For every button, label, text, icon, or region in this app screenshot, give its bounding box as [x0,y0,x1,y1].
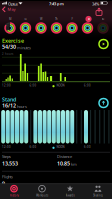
staticText: Th [55,17,58,21]
staticText: minutes [17,45,31,50]
staticText: 54/30 [2,43,16,50]
staticText: W [40,17,42,21]
staticText: Stand [2,96,16,103]
button[interactable] [34,14,48,36]
staticText: 9 [2,180,5,187]
button[interactable] [3,14,17,36]
button[interactable]: History [0,183,112,199]
staticText: Workouts [36,194,48,197]
button[interactable] [65,14,79,36]
button[interactable] [80,14,94,36]
staticText: 16/12 [2,102,16,109]
button[interactable] [96,14,110,36]
staticText: NOON [56,145,64,149]
button[interactable]: Awards [0,183,112,199]
staticText: 6:00 [29,84,36,87]
staticText: Su [101,17,104,21]
staticText: 34% [92,1,99,6]
button[interactable]: Workouts [0,183,112,199]
staticText: May [7,7,15,12]
staticText: Awards [65,194,74,197]
staticText: 12:00 [2,145,11,149]
staticText: NOON [56,84,64,87]
staticText: Steps [2,154,11,159]
staticText: 13,553 [2,160,18,167]
staticText: M [9,17,11,21]
staticText: Sharing [93,194,103,197]
staticText: Tu [24,17,27,21]
staticText: 2 hours [2,52,13,56]
button[interactable] [18,14,32,36]
staticText: 6:00 [84,84,91,87]
staticText: 10.85 [57,160,70,167]
staticText: km [71,162,77,167]
staticText: hours [17,104,27,109]
staticText: History [9,194,18,197]
button[interactable]: May [2,6,15,12]
button[interactable]: Sharing [0,183,112,199]
staticText: Distance [57,154,72,159]
staticText: 7:43 pm [49,1,64,6]
staticText: 6:00 [29,145,36,149]
staticText: Sa [87,17,89,21]
button[interactable] [49,14,63,36]
staticText: Flights [2,174,13,179]
staticText: Optus [8,1,18,6]
staticText: 6:00 [84,145,91,149]
staticText: Exercise [2,37,24,44]
staticText: 12:00 [2,84,11,87]
button[interactable] [95,7,102,16]
